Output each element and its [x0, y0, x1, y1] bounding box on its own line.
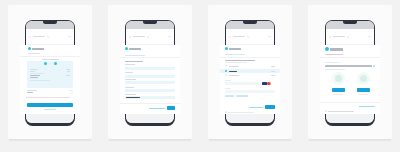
- button[interactable]: [225, 64, 275, 68]
- button[interactable]: [225, 73, 275, 77]
- button[interactable]: [8, 5, 92, 139]
- button[interactable]: [167, 106, 175, 110]
- button[interactable]: [265, 105, 275, 109]
- button[interactable]: [225, 69, 275, 73]
- button[interactable]: [332, 88, 345, 92]
- button[interactable]: [357, 88, 370, 92]
- button[interactable]: [125, 96, 175, 99]
- button[interactable]: [308, 5, 392, 139]
- button[interactable]: [27, 103, 73, 107]
- button[interactable]: [108, 5, 192, 139]
- button[interactable]: [208, 5, 292, 139]
